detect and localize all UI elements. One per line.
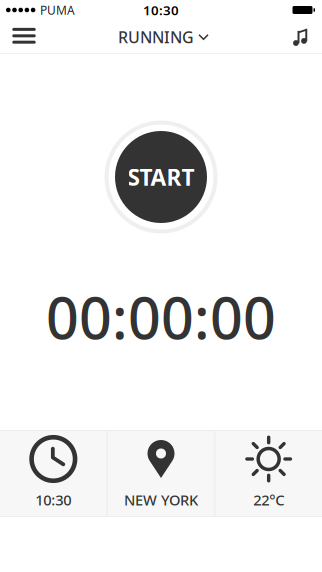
staticText: 10:30 (35, 490, 71, 509)
staticText: 00:00:00 (46, 279, 276, 355)
button[interactable]: RUNNING (118, 20, 208, 54)
staticText: 22°C (253, 490, 284, 509)
button[interactable]: NEW YORK (108, 430, 214, 517)
staticText: NEW YORK (124, 490, 198, 509)
staticText: 10:30 (143, 1, 179, 19)
button[interactable]: 10:30 (0, 430, 107, 517)
staticText: RUNNING (118, 26, 194, 48)
button[interactable]: START (104, 120, 218, 234)
staticText: START (127, 162, 194, 192)
staticText: PUMA (40, 2, 75, 18)
button[interactable]: Menu (0, 20, 48, 54)
button[interactable]: 22°C (215, 430, 322, 517)
button[interactable]: Music (278, 20, 322, 54)
